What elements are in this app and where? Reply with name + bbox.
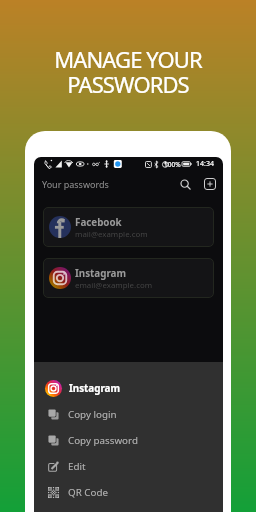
staticText: 14:34: [196, 159, 214, 169]
button[interactable]: Copy login: [34, 401, 223, 427]
staticText: Copy login: [68, 408, 117, 421]
button[interactable]: Add password: [201, 175, 219, 193]
staticText: Copy password: [68, 434, 138, 447]
staticText: Edit: [68, 460, 86, 473]
button[interactable]: Edit: [34, 453, 223, 479]
staticText: mail@example.com: [75, 229, 148, 240]
staticText: Instagram: [75, 267, 127, 280]
staticText: email@example.com: [75, 280, 153, 291]
button[interactable]: Copy password: [34, 427, 223, 453]
staticText: QR Code: [68, 486, 108, 499]
staticText: Instagram: [69, 382, 121, 395]
button[interactable]: Facebook: [43, 207, 214, 247]
staticText: 100%: [164, 160, 181, 169]
button[interactable]: Search: [176, 175, 194, 193]
staticText: Your passwords: [42, 178, 109, 190]
button[interactable]: Instagram: [43, 258, 214, 298]
staticText: MANAGE YOUR PASSWORDS: [54, 44, 202, 100]
button[interactable]: QR Code: [34, 479, 223, 505]
staticText: Facebook: [75, 216, 122, 229]
